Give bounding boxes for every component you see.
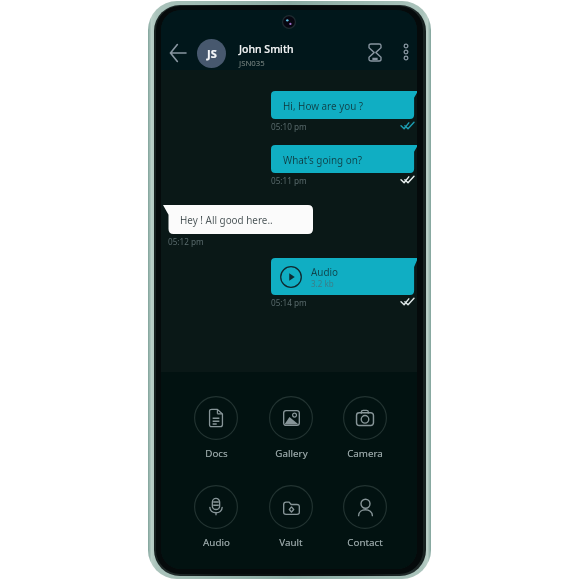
staticText: Camera bbox=[347, 447, 383, 460]
button[interactable]: Gallery bbox=[261, 396, 321, 460]
button[interactable]: Hi, How are you ? bbox=[271, 91, 417, 119]
button[interactable]: Audio bbox=[186, 485, 246, 549]
button[interactable]: Play audio bbox=[280, 266, 302, 288]
staticText: Docs bbox=[205, 447, 228, 460]
button[interactable]: Contact bbox=[335, 485, 395, 549]
staticText: Contact bbox=[347, 536, 383, 549]
staticText: 05:11 pm bbox=[271, 175, 307, 186]
staticText: Audio bbox=[311, 265, 339, 278]
staticText: JSN035 bbox=[239, 58, 265, 69]
staticText: What’s going on? bbox=[283, 153, 363, 166]
button[interactable]: Disappearing messages bbox=[361, 38, 389, 66]
staticText: Hey ! All good here.. bbox=[180, 213, 273, 226]
staticText: John Smith bbox=[239, 42, 294, 56]
button[interactable]: Docs bbox=[186, 396, 246, 460]
staticText: Hi, How are you ? bbox=[283, 99, 364, 112]
staticText: 05:12 pm bbox=[168, 236, 204, 247]
staticText: 05:14 pm bbox=[271, 297, 307, 308]
button[interactable]: John Smith bbox=[239, 42, 354, 69]
staticText: Vault bbox=[279, 536, 303, 549]
button[interactable]: Contact avatar John Smith bbox=[197, 39, 226, 68]
button[interactable]: Play audio bbox=[271, 258, 417, 295]
button[interactable]: Back bbox=[170, 44, 186, 62]
button[interactable]: Vault bbox=[261, 485, 321, 549]
staticText: Audio bbox=[203, 536, 230, 549]
staticText: 3.2 kb bbox=[311, 278, 334, 289]
button[interactable]: What’s going on? bbox=[271, 145, 417, 173]
staticText: Gallery bbox=[275, 447, 308, 460]
button[interactable]: More options bbox=[394, 38, 417, 66]
button[interactable]: Hey ! All good here.. bbox=[163, 205, 313, 234]
staticText: 05:10 pm bbox=[271, 121, 307, 132]
button[interactable]: Camera bbox=[335, 396, 395, 460]
staticText: JS bbox=[207, 46, 217, 61]
